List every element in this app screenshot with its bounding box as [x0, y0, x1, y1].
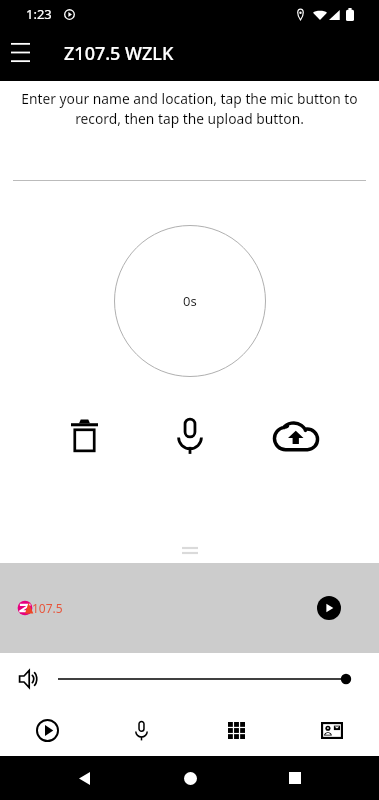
button[interactable]: Menu: [1, 33, 39, 71]
button[interactable]: Contact: [284, 705, 379, 756]
button[interactable]: Home: [168, 756, 212, 800]
staticText: Z107.5 WZLK: [64, 41, 174, 66]
staticText: 0s: [183, 292, 197, 310]
staticText: 1:23: [26, 5, 52, 23]
button[interactable]: Back: [62, 756, 106, 800]
button[interactable]: Upload: [268, 417, 324, 455]
button[interactable]: Listen: [0, 705, 94, 756]
button[interactable]: Apps: [189, 705, 284, 756]
staticText: Enter your name and location, tap the mi…: [20, 89, 359, 128]
button[interactable]: Record: [162, 417, 218, 455]
button[interactable]: Volume: [13, 664, 43, 694]
button[interactable]: Delete recording: [56, 417, 112, 455]
staticText: 107.5: [32, 600, 63, 616]
button[interactable]: Record: [94, 705, 189, 756]
button[interactable]: Recents: [273, 756, 317, 800]
button[interactable]: Z107.5: [17, 600, 64, 616]
button[interactable]: Play: [317, 596, 341, 620]
